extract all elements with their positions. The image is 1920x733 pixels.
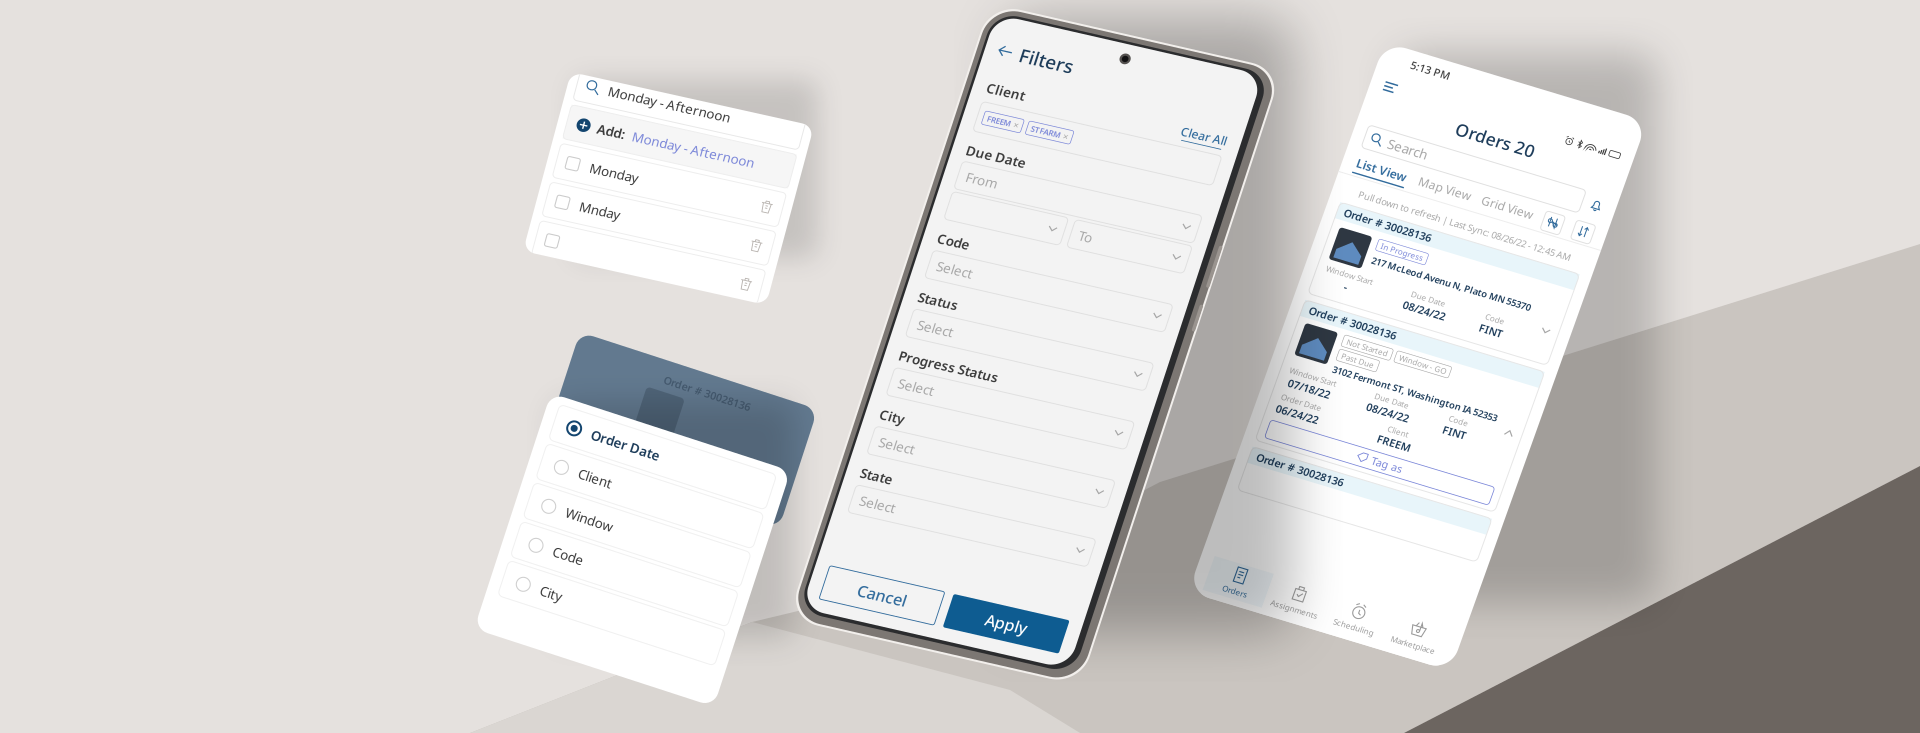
staticText: FINT <box>1570 281 1594 295</box>
button[interactable]: Apply <box>1140 589 1259 624</box>
button[interactable]: Window <box>563 483 791 520</box>
staticText: Select <box>1021 325 1058 342</box>
button[interactable]: Tag as <box>1405 437 1639 456</box>
staticText: Due Date <box>1495 270 1531 281</box>
button[interactable]: List View <box>1398 158 1452 177</box>
staticText: Order # 30028136 <box>1404 314 1495 328</box>
staticText: Progress Status <box>1013 359 1115 377</box>
button[interactable]: Select <box>1013 443 1259 472</box>
button[interactable]: From <box>1013 164 1259 193</box>
staticText: Apply <box>1179 596 1221 618</box>
button[interactable] <box>580 227 811 263</box>
staticText: × <box>1050 110 1055 123</box>
button[interactable]: Add: <box>580 104 811 140</box>
staticText: Clear All <box>1212 77 1259 93</box>
button[interactable]: Notifications <box>1633 131 1646 144</box>
staticText: Search <box>1422 129 1463 147</box>
staticText: List View <box>1399 158 1451 174</box>
button[interactable]: Back <box>1012 41 1027 53</box>
staticText: Tag as <box>1513 440 1545 454</box>
button[interactable]: Assignments <box>1460 584 1522 620</box>
staticText: 07/18/22 <box>1408 389 1452 403</box>
staticText: FREEM <box>1511 417 1546 431</box>
staticText: Marketplace <box>1592 607 1638 617</box>
staticText: Monday - Afternoon <box>612 74 737 91</box>
staticText: Map View <box>1464 157 1518 173</box>
button[interactable]: Code <box>563 524 791 561</box>
staticText: Select <box>1021 448 1058 466</box>
staticText: Orders 20 <box>1481 92 1563 115</box>
button[interactable]: Select <box>1013 319 1259 348</box>
staticText: Code <box>1013 236 1046 253</box>
button[interactable]: Select <box>1013 504 1259 533</box>
staticText: Not Started <box>1450 335 1493 345</box>
button[interactable]: Client <box>563 442 791 479</box>
button[interactable]: Marketplace <box>1584 584 1646 620</box>
staticText: Order Date <box>602 411 674 428</box>
button[interactable]: Cancel <box>1013 589 1131 624</box>
staticText: To <box>1147 201 1161 219</box>
staticText: Assignments <box>1466 607 1515 617</box>
staticText: - <box>1429 281 1432 295</box>
staticText: In Progress <box>1450 233 1494 244</box>
staticText: Due Date <box>1013 143 1074 161</box>
staticText: Order # 30028136 <box>1404 210 1495 224</box>
button[interactable]: Select <box>1013 381 1259 410</box>
staticText: Pull down to refresh | Last Sync: 08/26/… <box>1411 189 1632 201</box>
staticText: Monday <box>614 155 664 172</box>
staticText: FREEM <box>1023 111 1047 122</box>
button[interactable]: To <box>1139 196 1259 225</box>
staticText: Window Start <box>1406 270 1455 281</box>
staticText: Monday - Afternoon <box>647 114 772 131</box>
staticText: Filters <box>1034 34 1089 59</box>
button[interactable]: Filter <box>1594 157 1614 177</box>
staticText: Select <box>1021 386 1058 404</box>
staticText: Order Date <box>1407 406 1449 417</box>
button[interactable]: Monday <box>580 145 811 181</box>
staticText: 06/24/22 <box>1406 417 1450 431</box>
button[interactable]: Map View <box>1464 157 1518 177</box>
staticText: Client <box>1518 406 1540 417</box>
button[interactable]: Select <box>1013 257 1259 286</box>
staticText: Select <box>1021 510 1058 528</box>
staticText: Client <box>1013 77 1052 95</box>
staticText: 08/24/22 <box>1491 281 1535 295</box>
staticText: Code <box>1572 270 1592 281</box>
staticText: Cancel <box>1047 596 1097 618</box>
staticText: From <box>1021 169 1053 187</box>
staticText: 3102 Fermont ST, Washington IA 52353 <box>1446 364 1618 377</box>
staticText: Status <box>1013 297 1054 315</box>
button[interactable]: Clear All <box>1212 77 1259 95</box>
staticText: City <box>1013 421 1038 438</box>
staticText: Client <box>602 452 637 469</box>
button[interactable]: Scheduling <box>1522 584 1584 620</box>
staticText: Code <box>602 534 634 551</box>
staticText: 5:13 PM <box>1417 49 1458 63</box>
button[interactable]: Sort <box>1626 157 1646 177</box>
button[interactable]: Mnday <box>580 186 811 222</box>
staticText: Add: <box>611 114 640 131</box>
staticText: 217 McLeod Avenu N, Plato MN 55370 <box>1446 248 1612 261</box>
staticText: Order # 30028136 <box>1404 470 1495 484</box>
button[interactable]: City <box>563 565 791 602</box>
button[interactable]: Order Date <box>563 401 791 438</box>
staticText: Mnday <box>614 196 656 213</box>
staticText: Past Due <box>1450 350 1484 360</box>
button[interactable] <box>1013 196 1132 225</box>
staticText: Select <box>1021 263 1058 281</box>
staticText: Due Date <box>1495 379 1531 389</box>
